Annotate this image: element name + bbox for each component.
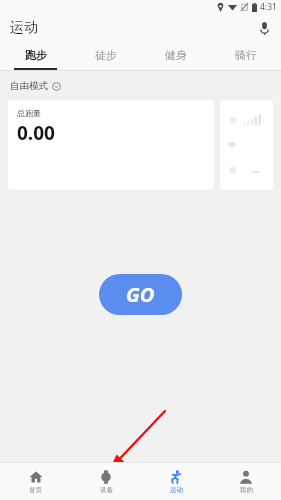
- button[interactable]: 自由模式: [10, 80, 61, 92]
- staticText: 总跑量: [17, 108, 41, 118]
- staticText: GO: [126, 281, 155, 308]
- button[interactable]: 健身: [141, 41, 211, 68]
- button[interactable]: 我的: [211, 463, 281, 500]
- staticText: 骑行: [235, 48, 257, 62]
- staticText: 首页: [29, 486, 42, 494]
- button[interactable]: Status: [220, 100, 273, 190]
- button[interactable]: Voice search: [253, 17, 275, 39]
- button[interactable]: 设备: [71, 463, 141, 500]
- staticText: 运动: [10, 19, 38, 37]
- staticText: 设备: [100, 486, 113, 494]
- staticText: 0.00: [17, 120, 55, 146]
- button[interactable]: 首页: [0, 463, 71, 500]
- staticText: 我的: [240, 486, 253, 494]
- staticText: 徒步: [95, 48, 117, 62]
- button[interactable]: 徒步: [71, 41, 141, 68]
- staticText: 自由模式: [10, 80, 48, 92]
- staticText: 运动: [170, 486, 183, 494]
- staticText: 跑步: [25, 48, 47, 62]
- button[interactable]: GO: [99, 274, 182, 315]
- button[interactable]: 跑步: [0, 41, 71, 68]
- staticText: 4:31: [260, 1, 277, 13]
- button[interactable]: 运动: [141, 463, 211, 500]
- button[interactable]: 骑行: [211, 41, 281, 68]
- staticText: 健身: [165, 48, 187, 62]
- button[interactable]: 总跑量: [8, 100, 214, 190]
